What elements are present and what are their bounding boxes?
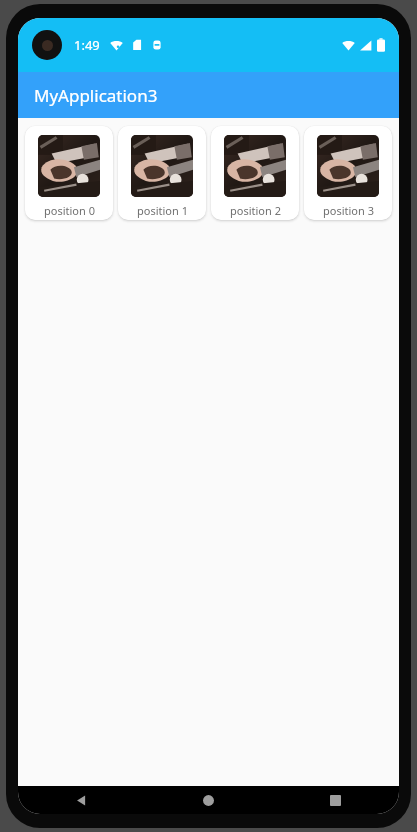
button[interactable]: position 2 (211, 126, 299, 220)
button[interactable]: position 3 (304, 126, 392, 220)
button[interactable]: Home (145, 786, 272, 814)
staticText: position 2 (230, 203, 281, 218)
button[interactable]: position 1 (118, 126, 206, 220)
button[interactable]: Back (18, 786, 145, 814)
staticText: 1:49 (74, 36, 100, 54)
staticText: position 1 (137, 203, 188, 218)
staticText: position 0 (44, 203, 95, 218)
button[interactable]: position 0 (25, 126, 113, 220)
staticText: position 3 (323, 203, 374, 218)
button[interactable]: Recent apps (272, 786, 399, 814)
staticText: MyApplication3 (34, 84, 158, 107)
